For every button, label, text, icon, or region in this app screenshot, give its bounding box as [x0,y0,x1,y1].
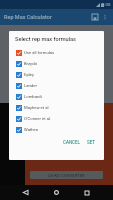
staticText: Rep Max Calculator [4,14,52,20]
staticText: CANCEL [63,140,81,145]
button[interactable]: More options [100,12,110,22]
button[interactable]: Wathen [9,124,104,135]
button[interactable]: Recent apps [79,185,95,200]
button[interactable]: Save [90,12,100,22]
staticText: O'Conner et al. [24,116,52,121]
button[interactable]: Mayhew et al. [9,102,104,113]
staticText: Lombardi [24,94,42,99]
staticText: Brzycki [24,61,38,66]
staticText: SET [87,140,96,145]
button[interactable]: SET [84,138,99,147]
staticText: 2:08 [102,2,111,7]
staticText: Select rep max formulas [15,36,76,43]
staticText: Use all formulas [24,50,55,55]
button[interactable]: LB/KG CONVERTER [30,171,103,179]
button[interactable]: CANCEL [60,138,84,147]
button[interactable]: Epley [9,69,104,80]
staticText: LB/KG CONVERTER [48,173,85,178]
staticText: Lander [24,83,37,88]
button[interactable]: Lander [9,80,104,91]
button[interactable]: O'Conner et al. [9,113,104,124]
button[interactable]: Use all formulas [9,47,104,58]
staticText: Wathen [24,127,39,132]
staticText: Mayhew et al. [24,105,50,110]
button[interactable]: Home [48,185,64,200]
button[interactable]: Lombardi [9,91,104,102]
button[interactable]: Brzycki [9,58,104,69]
staticText: Epley [24,72,34,77]
button[interactable]: Back [17,185,33,200]
